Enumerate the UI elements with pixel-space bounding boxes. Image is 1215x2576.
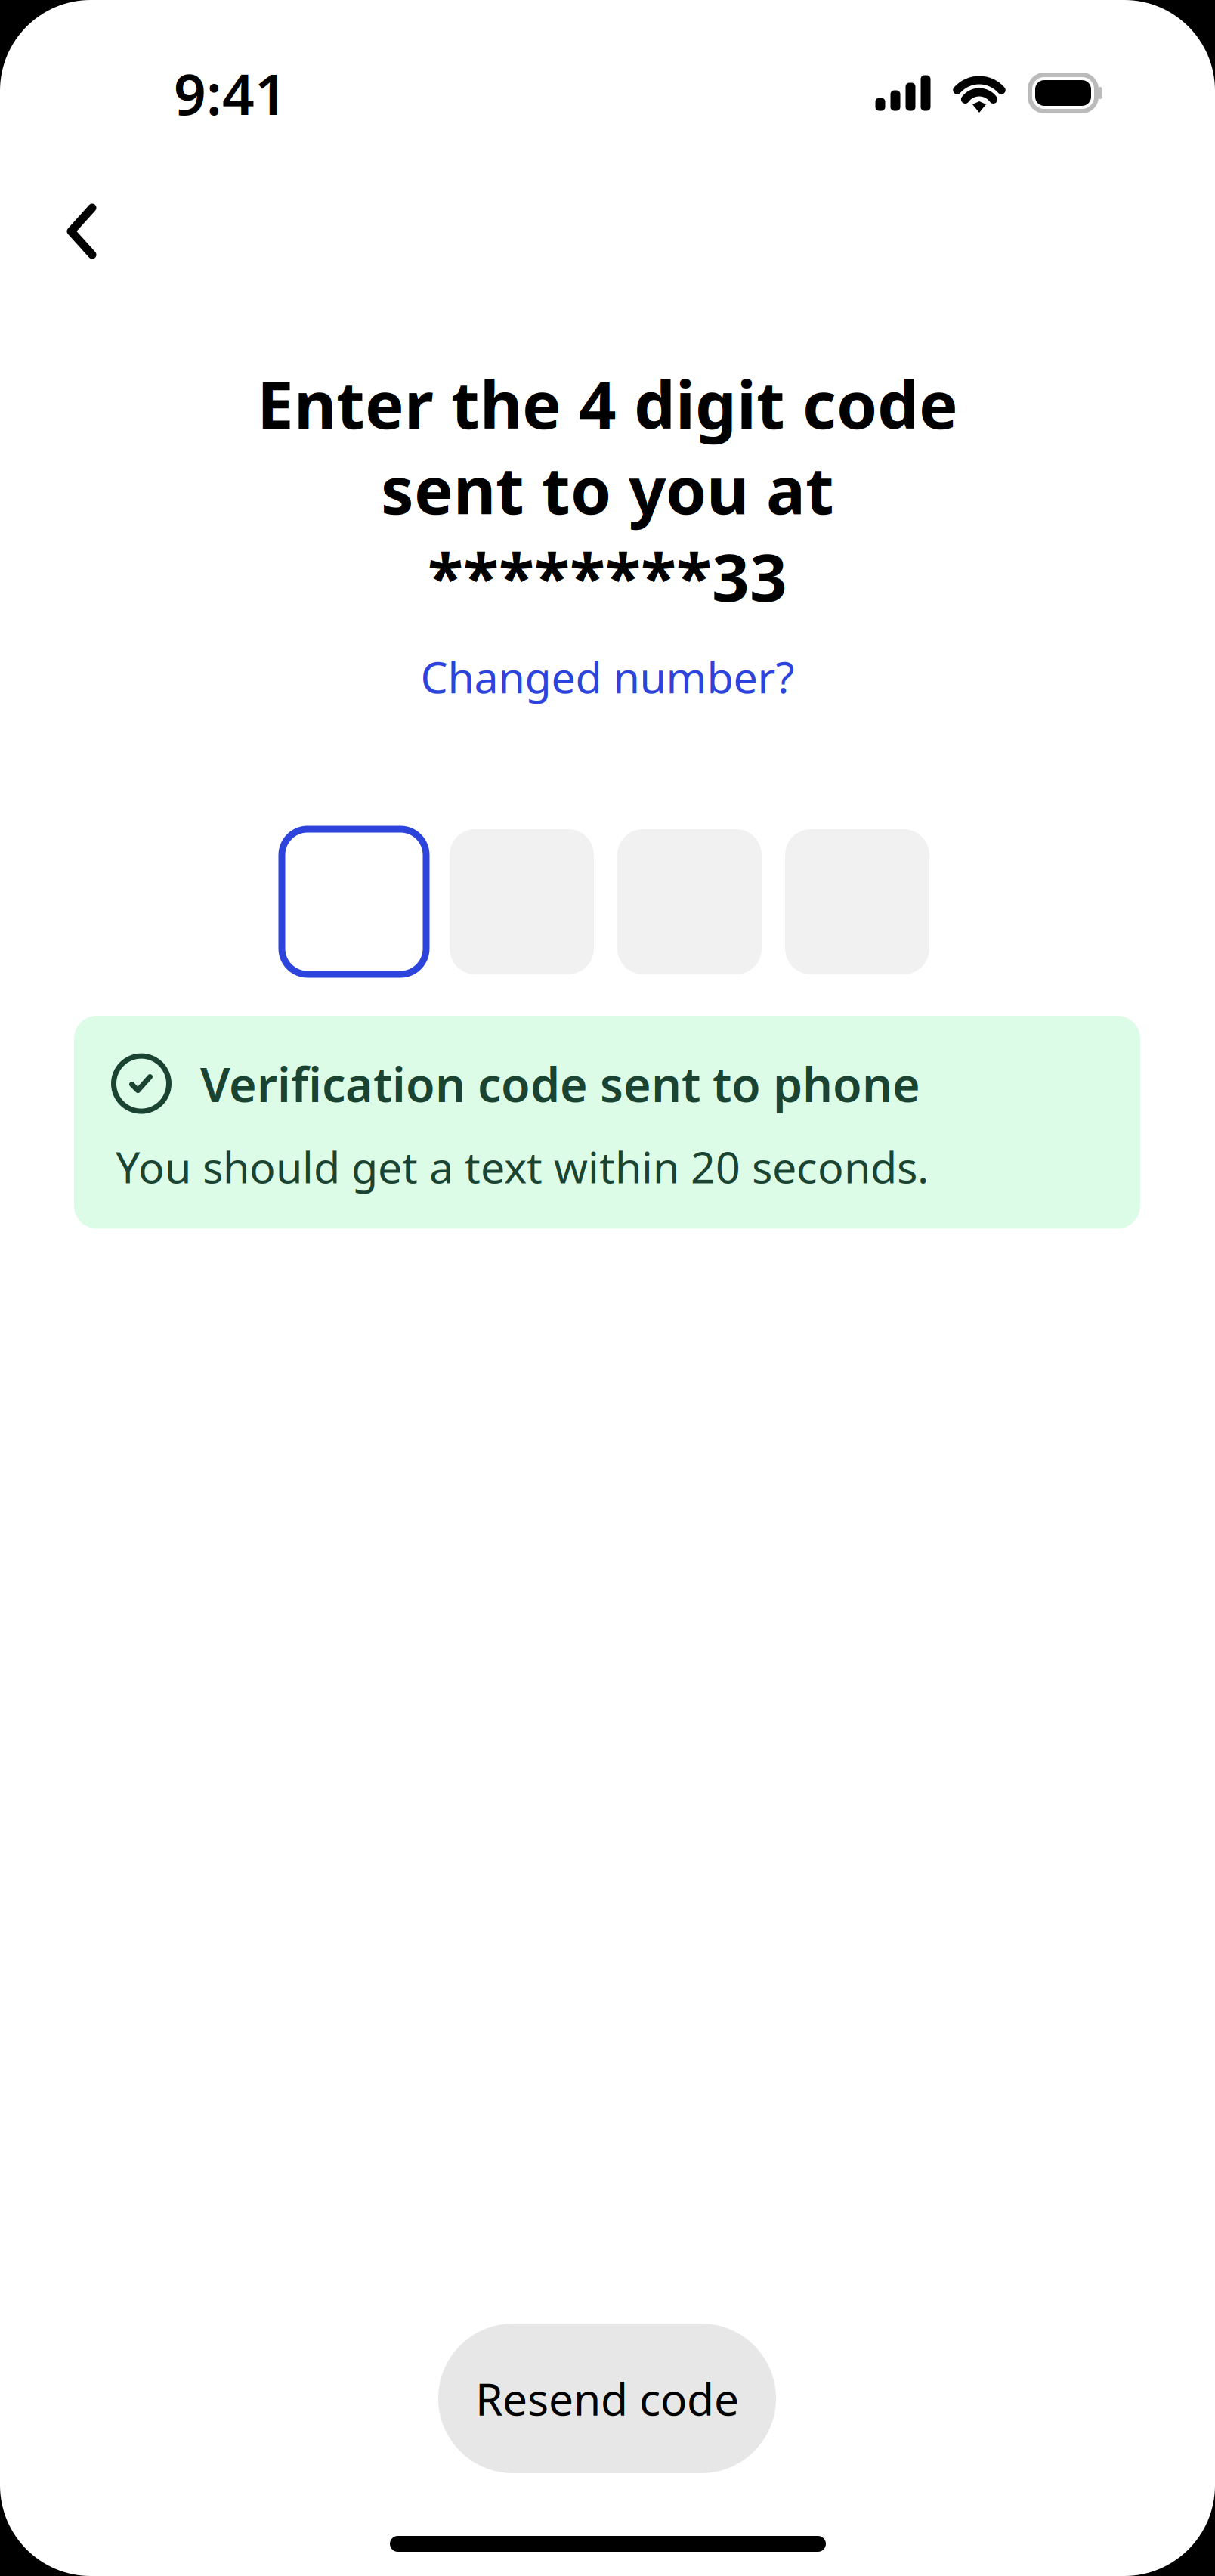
staticText: You should get a text within 20 seconds.	[116, 1138, 929, 1195]
staticText: 9:41	[174, 55, 287, 130]
staticText: ********33	[428, 533, 787, 620]
staticText: Changed number?	[420, 648, 795, 705]
staticText: sent to you at	[381, 445, 834, 532]
staticText: Resend code	[475, 2369, 739, 2428]
staticText: Verification code sent to phone	[200, 1052, 920, 1115]
button[interactable]: Back	[33, 183, 130, 280]
button[interactable]: Changed number?	[230, 650, 985, 703]
button[interactable]: Digit 1	[282, 829, 426, 974]
staticText: Enter the 4 digit code	[257, 360, 958, 447]
button[interactable]: Resend code	[438, 2324, 776, 2473]
